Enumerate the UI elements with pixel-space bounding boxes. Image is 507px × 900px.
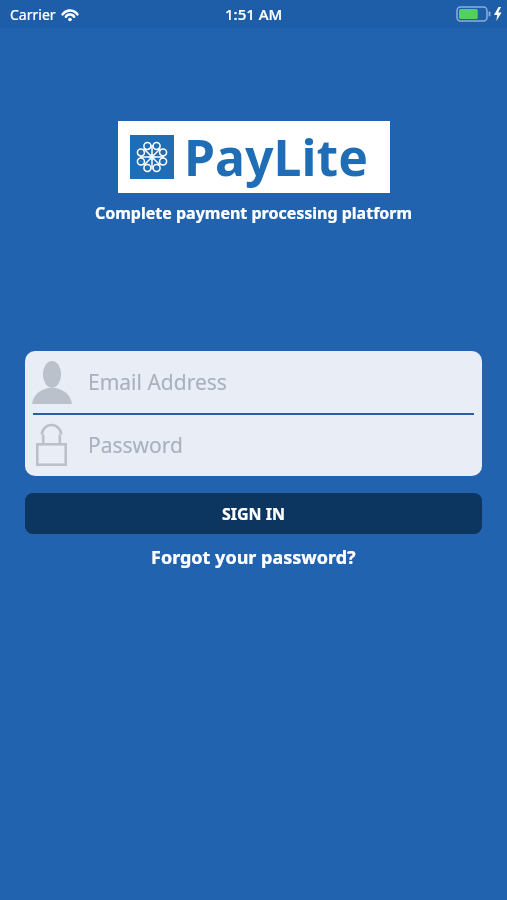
staticText: Password xyxy=(88,431,183,460)
staticText: Carrier xyxy=(10,5,56,24)
staticText: Email Address xyxy=(88,368,227,397)
staticText: 1:51 AM xyxy=(225,4,283,24)
button[interactable]: SIGN IN xyxy=(25,493,482,534)
button[interactable]: Email Address xyxy=(25,351,482,413)
button[interactable]: Forgot your password? xyxy=(151,545,356,570)
staticText: Complete payment processing platform xyxy=(95,202,413,224)
staticText: SIGN IN xyxy=(222,503,286,525)
staticText: PayLite xyxy=(184,123,368,191)
button[interactable]: Password xyxy=(25,415,482,476)
